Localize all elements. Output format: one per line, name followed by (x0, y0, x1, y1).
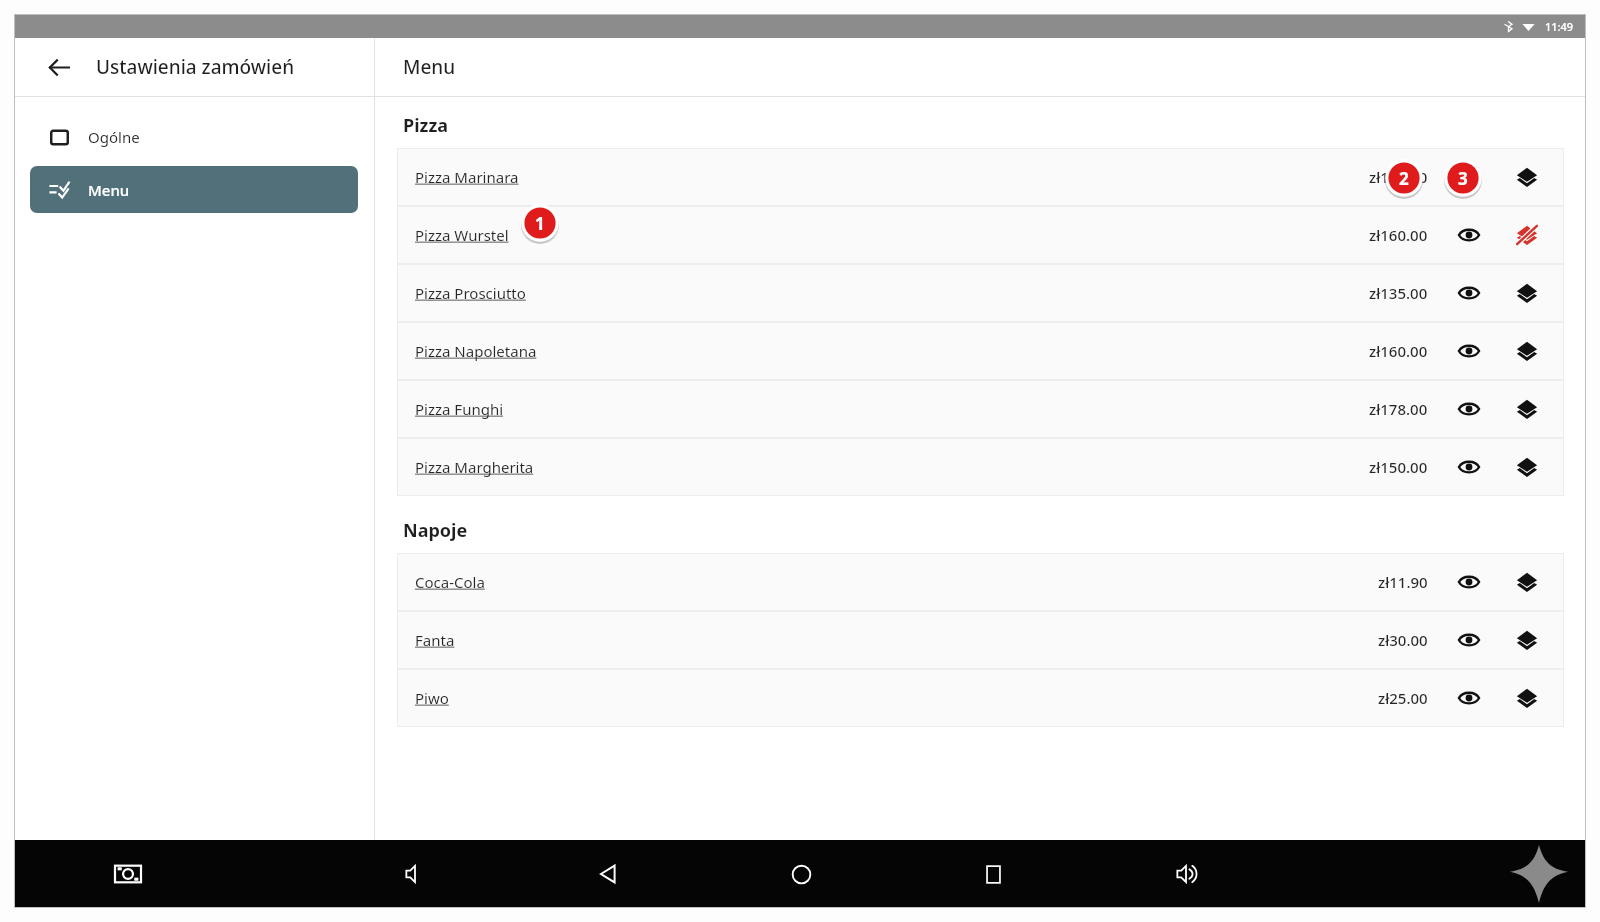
staticText: zł11.90 (1378, 572, 1428, 592)
button[interactable]: Back (585, 851, 631, 897)
button[interactable]: Enable variants (1512, 220, 1542, 250)
button[interactable]: Screenshot (106, 852, 150, 896)
staticText: Pizza Napoletana (415, 341, 537, 361)
button[interactable]: Pizza Funghi (397, 380, 1564, 438)
staticText: 2 (1399, 167, 1409, 190)
staticText: zł150.00 (1369, 457, 1428, 477)
staticText: zł178.00 (1369, 399, 1428, 419)
button[interactable]: Hide item (1454, 452, 1484, 482)
button[interactable]: Fanta (397, 611, 1564, 669)
button[interactable]: Hide item (1454, 278, 1484, 308)
staticText: zł25.00 (1378, 688, 1428, 708)
staticText: zł160.00 (1369, 225, 1428, 245)
button[interactable]: Ogólne (30, 113, 358, 160)
button[interactable]: Disable variants (1512, 278, 1542, 308)
button[interactable]: Hide item (1454, 336, 1484, 366)
staticText: 3 (1458, 167, 1468, 190)
button[interactable]: Disable variants (1512, 336, 1542, 366)
button[interactable]: Coca-Cola (397, 553, 1564, 611)
staticText: Pizza (403, 113, 449, 138)
button[interactable]: Hide item (1454, 625, 1484, 655)
button[interactable]: Pizza Margherita (397, 438, 1564, 496)
button[interactable]: Pizza Wurstel (397, 206, 1564, 264)
staticText: zł160.00 (1369, 341, 1428, 361)
staticText: Pizza Marinara (415, 167, 519, 187)
button[interactable]: Disable variants (1512, 394, 1542, 424)
button[interactable]: Menu (30, 166, 358, 213)
button[interactable]: Hide item (1454, 220, 1484, 250)
button[interactable]: Volume down (392, 851, 438, 897)
button[interactable]: Hide item (1454, 567, 1484, 597)
staticText: Menu (403, 54, 456, 80)
staticText: Ogólne (88, 127, 140, 147)
button[interactable]: Hide item (1454, 683, 1484, 713)
button[interactable]: Hide item (1454, 394, 1484, 424)
button[interactable]: Disable variants (1512, 683, 1542, 713)
button[interactable]: Pizza Prosciutto (397, 264, 1564, 322)
staticText: Pizza Funghi (415, 399, 504, 419)
staticText: zł30.00 (1378, 630, 1428, 650)
staticText: Pizza Wurstel (415, 225, 509, 245)
staticText: zł135.00 (1369, 283, 1428, 303)
button[interactable]: Recents (970, 851, 1016, 897)
button[interactable]: Pizza Napoletana (397, 322, 1564, 380)
staticText: Pizza Margherita (415, 457, 534, 477)
button[interactable]: Volume up (1163, 851, 1209, 897)
staticText: Fanta (415, 630, 455, 650)
staticText: zł129.00 (1369, 167, 1428, 187)
staticText: Piwo (415, 688, 449, 708)
staticText: 11:49 (1545, 19, 1574, 34)
button[interactable]: Disable variants (1512, 567, 1542, 597)
staticText: Ustawienia zamówień (96, 54, 295, 80)
button[interactable]: Show item (1454, 162, 1484, 192)
button[interactable]: Pizza Marinara (397, 148, 1564, 206)
button[interactable]: Disable variants (1512, 452, 1542, 482)
staticText: 1 (535, 212, 545, 235)
button[interactable]: Piwo (397, 669, 1564, 727)
staticText: Pizza Prosciutto (415, 283, 526, 303)
button[interactable]: Disable variants (1512, 162, 1542, 192)
button[interactable]: Disable variants (1512, 625, 1542, 655)
button[interactable]: Back (42, 50, 76, 84)
button[interactable]: Home (778, 851, 824, 897)
staticText: Napoje (403, 518, 468, 543)
staticText: Coca-Cola (415, 572, 485, 592)
staticText: Menu (88, 180, 130, 200)
